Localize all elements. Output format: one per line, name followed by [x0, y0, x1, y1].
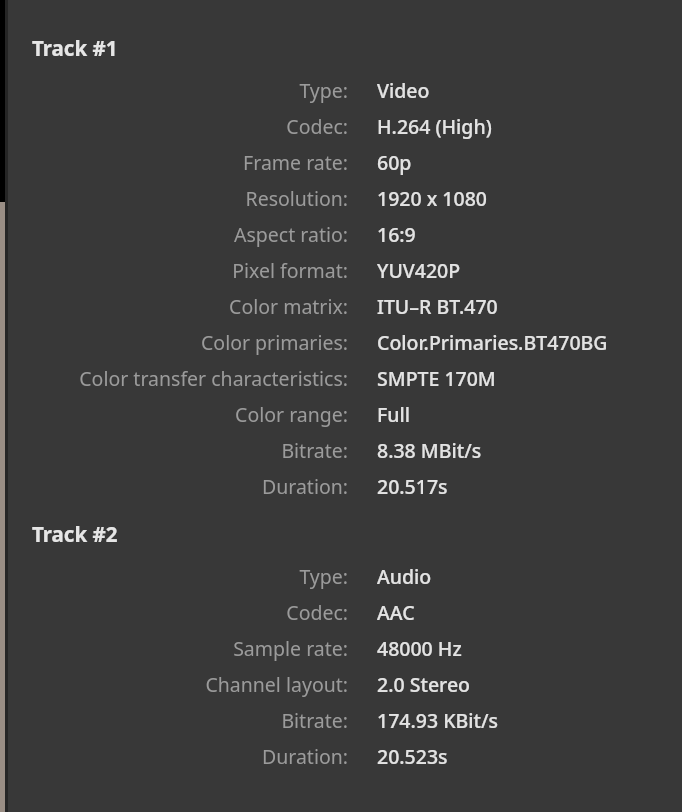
button[interactable]: Track #2 [0, 516, 682, 552]
button[interactable]: Frame rate: 60p [0, 144, 682, 180]
staticText: 2.0 Stereo [377, 671, 471, 698]
staticText: 16:9 [377, 221, 416, 248]
button[interactable]: Color range: Full [0, 396, 682, 432]
button[interactable]: Sample rate: 48000 Hz [0, 630, 682, 666]
staticText: 20.523s [377, 743, 448, 770]
staticText: Track #2 [32, 520, 118, 548]
staticText: 174.93 KBit/s [377, 707, 498, 734]
staticText: YUV420P [377, 257, 461, 284]
button[interactable]: Color transfer characteristics: SMPTE 17… [0, 360, 682, 396]
staticText: H.264 (High) [377, 113, 492, 140]
staticText: Color range: [235, 401, 348, 428]
staticText: Track #1 [32, 34, 118, 62]
staticText: Codec: [286, 599, 348, 626]
button[interactable]: Duration: 20.517s [0, 468, 682, 504]
staticText: Frame rate: [243, 149, 348, 176]
staticText: Type: [299, 77, 348, 104]
staticText: Color primaries: [201, 329, 348, 356]
staticText: AAC [377, 599, 415, 626]
staticText: Color matrix: [229, 293, 348, 320]
button[interactable]: Channel layout: 2.0 Stereo [0, 666, 682, 702]
staticText: Bitrate: [281, 707, 348, 734]
button[interactable]: Duration: 20.523s [0, 738, 682, 774]
staticText: Video [377, 77, 430, 104]
button[interactable]: Bitrate: 8.38 MBit/s [0, 432, 682, 468]
staticText: Color.Primaries.BT470BG [377, 329, 608, 356]
staticText: Codec: [286, 113, 348, 140]
button[interactable]: Bitrate: 174.93 KBit/s [0, 702, 682, 738]
staticText: 60p [377, 149, 412, 176]
button[interactable]: Pixel format: YUV420P [0, 252, 682, 288]
staticText: Audio [377, 563, 432, 590]
staticText: Color transfer characteristics: [79, 365, 348, 392]
button[interactable]: Codec: AAC [0, 594, 682, 630]
staticText: ITU–R BT.470 [377, 293, 498, 320]
staticText: Channel layout: [205, 671, 348, 698]
staticText: SMPTE 170M [377, 365, 496, 392]
staticText: Bitrate: [281, 437, 348, 464]
staticText: Aspect ratio: [234, 221, 348, 248]
staticText: 1920 x 1080 [377, 185, 487, 212]
staticText: Duration: [261, 473, 348, 500]
button[interactable]: Color primaries: Color.Primaries.BT470BG [0, 324, 682, 360]
button[interactable]: Codec: H.264 (High) [0, 108, 682, 144]
staticText: 20.517s [377, 473, 448, 500]
staticText: Duration: [261, 743, 348, 770]
button[interactable]: Resolution: 1920 x 1080 [0, 180, 682, 216]
staticText: 48000 Hz [377, 635, 462, 662]
staticText: Sample rate: [233, 635, 348, 662]
button[interactable]: Color matrix: ITU–R BT.470 [0, 288, 682, 324]
staticText: Pixel format: [232, 257, 348, 284]
button[interactable]: Type: Audio [0, 558, 682, 594]
staticText: Resolution: [245, 185, 348, 212]
button[interactable]: Type: Video [0, 72, 682, 108]
staticText: Full [377, 401, 411, 428]
staticText: Type: [299, 563, 348, 590]
staticText: 8.38 MBit/s [377, 437, 482, 464]
button[interactable]: Aspect ratio: 16:9 [0, 216, 682, 252]
button[interactable]: Track #1 [0, 30, 682, 66]
